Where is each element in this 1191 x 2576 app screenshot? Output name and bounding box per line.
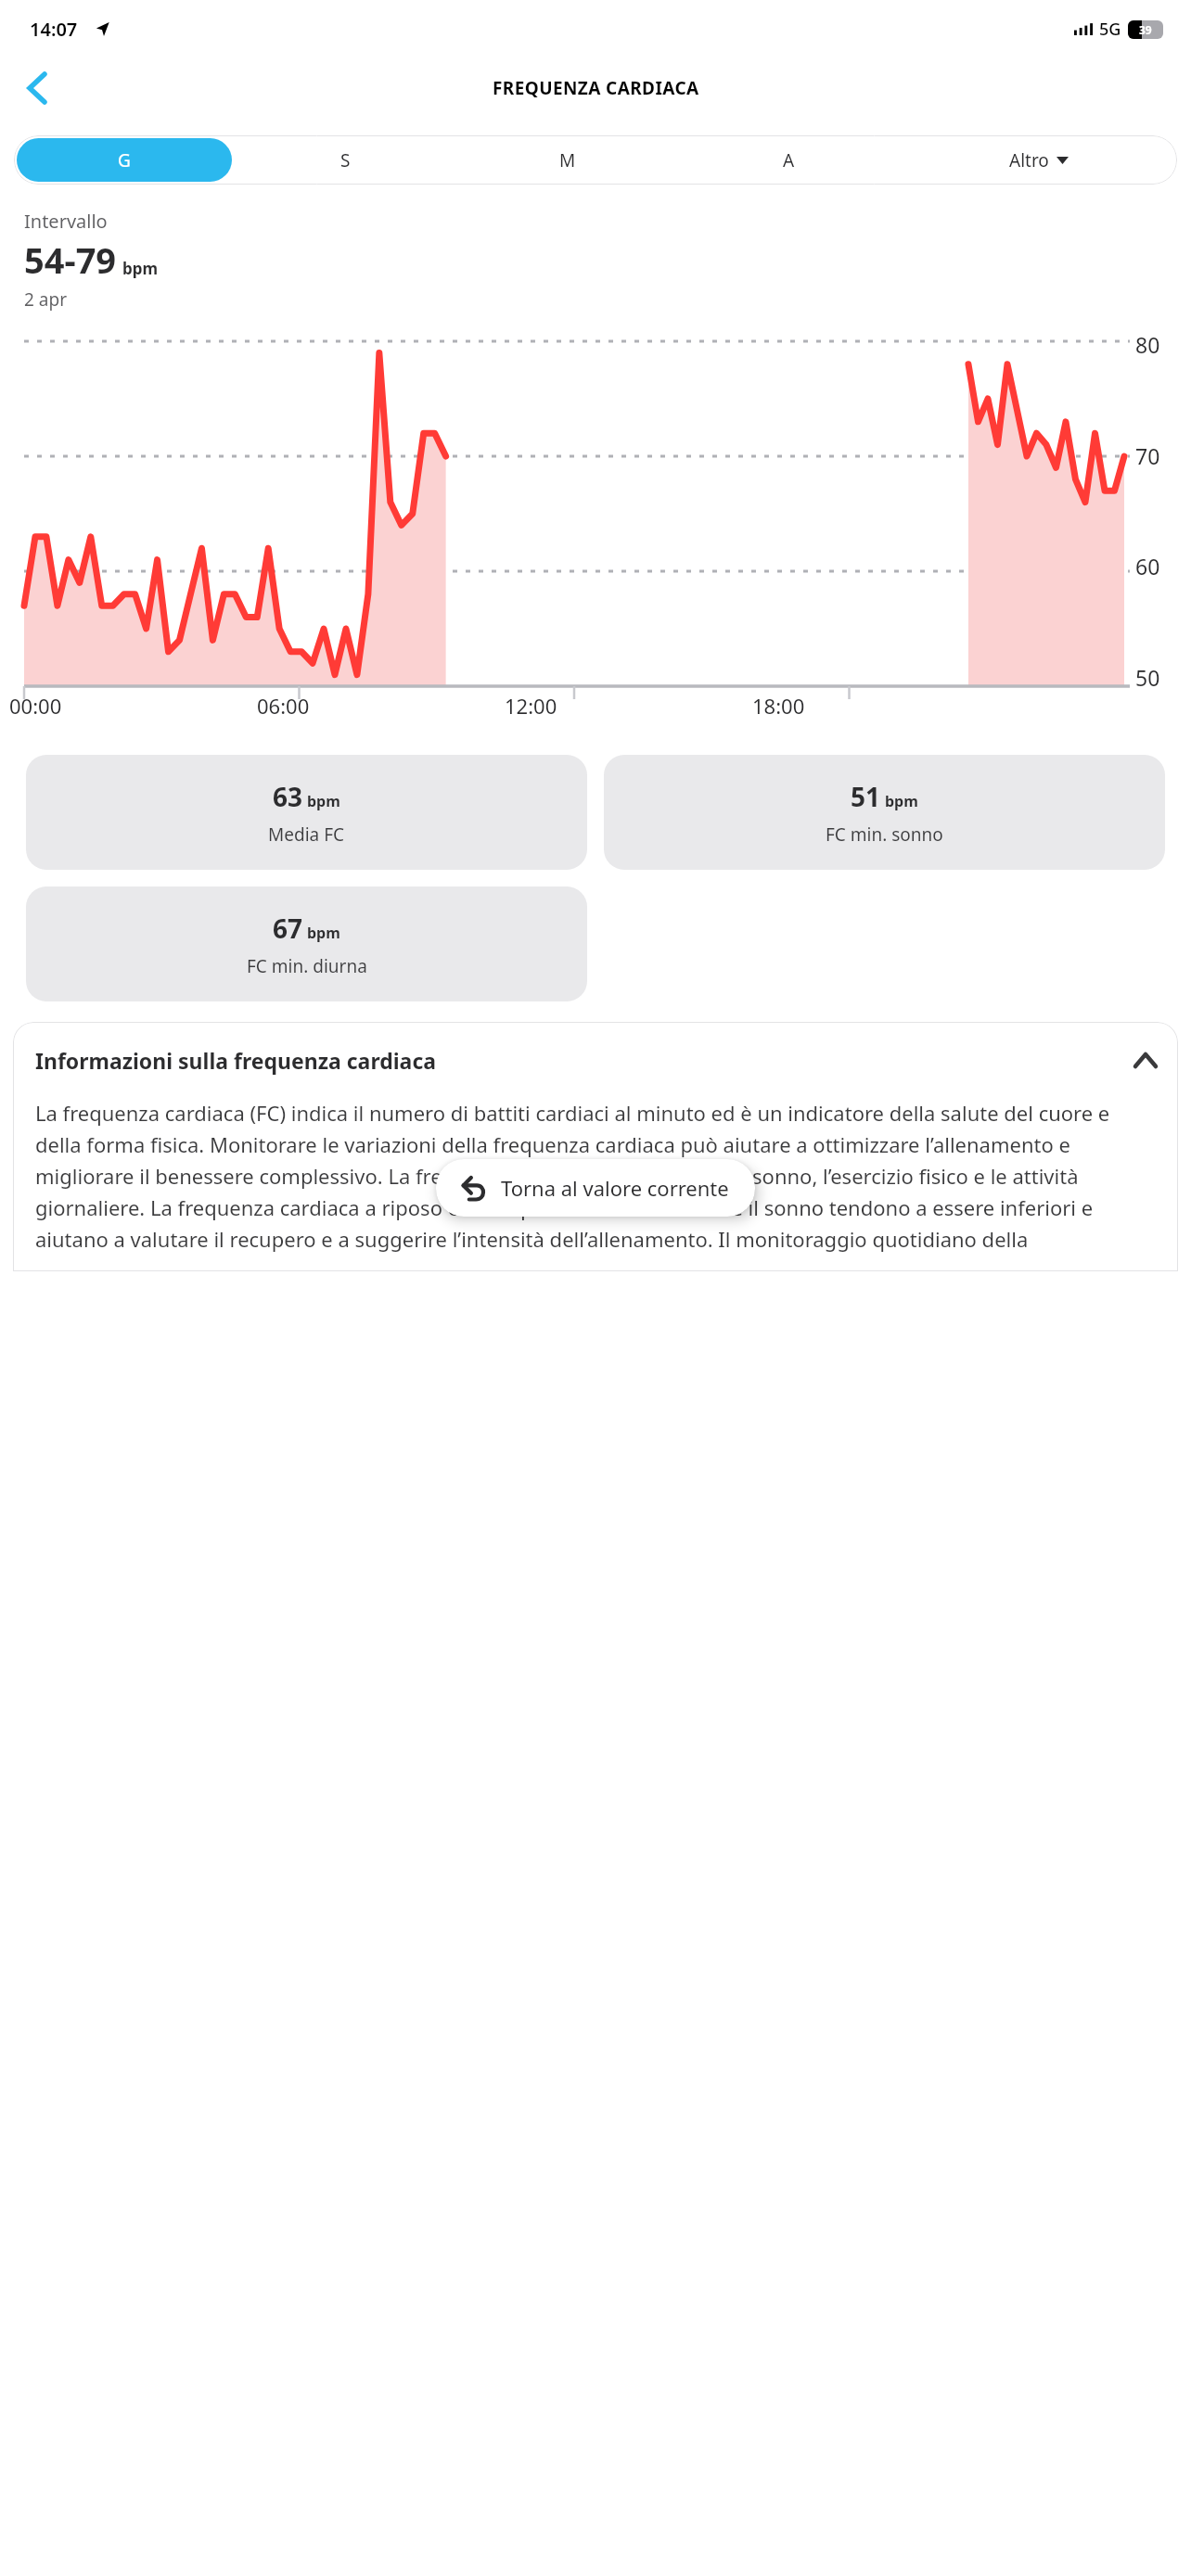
staticText: 2 apr [24,287,67,312]
staticText: 18:00 [752,692,805,720]
staticText: 63 [273,779,303,814]
button[interactable]: S [237,138,454,182]
staticText: 60 [1135,552,1160,580]
button[interactable]: Indietro [11,62,63,114]
staticText: 14:07 [30,17,78,42]
staticText: 80 [1135,330,1160,359]
button[interactable]: Informazioni sulla frequenza cardiaca [35,1046,1156,1075]
staticText: bpm [307,923,340,943]
staticText: Torna al valore corrente [501,1174,729,1202]
staticText: S [340,148,351,172]
staticText: 54-79 [24,236,117,284]
staticText: FREQUENZA CARDIACA [493,76,699,100]
staticText: 67 [273,911,303,946]
button[interactable]: A [681,138,897,182]
staticText: FC min. diurna [247,954,367,978]
staticText: Informazioni sulla frequenza cardiaca [35,1046,1135,1075]
staticText: A [783,148,795,172]
staticText: M [559,148,576,172]
button[interactable]: 51 [604,755,1165,870]
button[interactable]: Altro [900,135,1177,185]
staticText: 39 [1139,22,1152,37]
staticText: La frequenza cardiaca (FC) indica il num… [35,1099,1156,1253]
staticText: 5G [1099,18,1121,41]
button[interactable]: 63 [26,755,587,870]
staticText: bpm [307,791,340,811]
staticText: 12:00 [505,692,557,720]
staticText: bpm [122,258,159,279]
staticText: 50 [1135,663,1160,692]
staticText: Altro [1009,148,1049,172]
staticText: 00:00 [9,692,62,720]
staticText: 06:00 [257,692,310,720]
staticText: bpm [885,791,918,811]
staticText: 70 [1135,441,1160,470]
button[interactable]: 67 [26,886,587,1001]
button[interactable]: G [17,138,232,182]
staticText: 51 [851,779,881,814]
button[interactable]: M [459,138,675,182]
staticText: Media FC [268,823,345,847]
staticText: FC min. sonno [826,823,943,847]
button[interactable]: Torna al valore corrente [436,1159,755,1217]
staticText: Intervallo [24,209,108,234]
staticText: G [118,148,131,172]
